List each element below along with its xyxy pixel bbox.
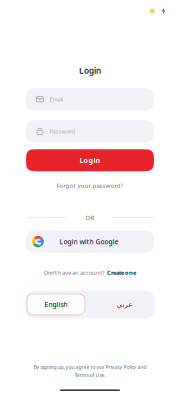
staticText: Forgot your password? xyxy=(56,181,123,189)
staticText: عربي xyxy=(116,300,132,308)
staticText: OR xyxy=(85,213,94,222)
staticText: Login xyxy=(79,65,101,76)
button[interactable]: Login xyxy=(26,149,154,171)
button[interactable]: Don't have an account? xyxy=(44,269,136,276)
staticText: Terms of Use. xyxy=(74,371,105,378)
button[interactable]: Email xyxy=(26,88,154,110)
staticText: English xyxy=(44,300,67,309)
staticText: Don't have an account? xyxy=(44,269,104,276)
staticText: Password xyxy=(50,127,76,135)
staticText: Login xyxy=(79,155,100,165)
button[interactable]: Login with Google xyxy=(26,231,154,253)
staticText: Email xyxy=(50,95,63,103)
button[interactable]: عربي xyxy=(95,294,153,315)
button[interactable]: Password xyxy=(26,120,154,142)
staticText: By signing up, you agree to our Privacy … xyxy=(33,364,146,370)
staticText: Login with Google xyxy=(59,237,118,246)
button[interactable]: English xyxy=(27,294,85,315)
staticText: Create one xyxy=(107,269,136,276)
button[interactable]: Forgot your password? xyxy=(56,181,123,189)
